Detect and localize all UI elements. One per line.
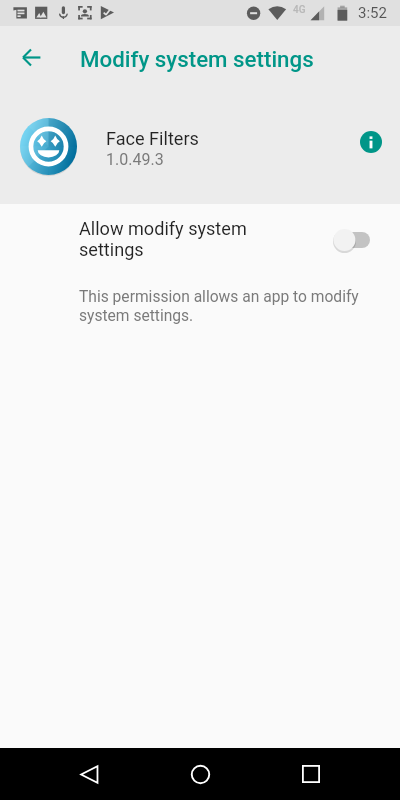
button[interactable]: Navigate up <box>11 37 51 77</box>
staticText: Face Filters <box>106 128 199 149</box>
staticText: 1.0.49.3 <box>106 150 164 169</box>
staticText: 3:52 <box>358 4 387 22</box>
staticText: This permission allows an app to modify … <box>79 288 367 324</box>
button[interactable]: Allow modify system settings <box>0 212 400 268</box>
button[interactable]: Home <box>169 748 231 800</box>
button[interactable]: App info <box>348 119 394 165</box>
button[interactable]: Back <box>58 748 120 800</box>
staticText: 4G <box>293 4 306 16</box>
staticText: Allow modify system settings <box>79 218 279 260</box>
staticText: Modify system settings <box>80 46 314 72</box>
button[interactable]: Recent apps <box>280 748 342 800</box>
